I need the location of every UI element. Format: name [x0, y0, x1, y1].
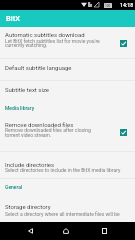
button[interactable]: Back: [12, 222, 48, 240]
staticText: 100: [105, 4, 111, 8]
button[interactable]: Recent apps: [86, 222, 122, 240]
button[interactable]: [0, 27, 135, 58]
staticText: Select directories to include in the Bit…: [5, 167, 121, 173]
button[interactable]: [0, 152, 135, 178]
button[interactable]: [0, 116, 135, 151]
staticText: Let BitX fetch subtitles list for movie …: [5, 38, 100, 44]
staticText: Automatic subtitles download: [5, 31, 85, 38]
staticText: currently watching.: [5, 42, 48, 48]
button[interactable]: Home: [48, 222, 84, 240]
button[interactable]: [0, 81, 135, 100]
staticText: Default subtitle language: [5, 64, 72, 71]
staticText: Storage directory: [5, 203, 51, 210]
button[interactable]: [0, 199, 135, 222]
staticText: Remove downloaded files: [5, 121, 74, 128]
button[interactable]: Toggle setting: [120, 129, 127, 136]
staticText: torrent video stream.: [5, 132, 52, 138]
button[interactable]: Toggle setting: [120, 40, 127, 47]
staticText: Include directories: [5, 161, 55, 168]
staticText: Subtitle text size: [5, 86, 49, 93]
staticText: Remove downloaded files after closing: [5, 127, 91, 133]
button[interactable]: [0, 59, 135, 80]
staticText: Select a directory where all intermediat…: [5, 211, 120, 217]
staticText: Media library: [5, 105, 35, 111]
staticText: BitX: [6, 14, 20, 23]
staticText: 14:18: [120, 2, 134, 8]
staticText: General: [5, 184, 23, 190]
